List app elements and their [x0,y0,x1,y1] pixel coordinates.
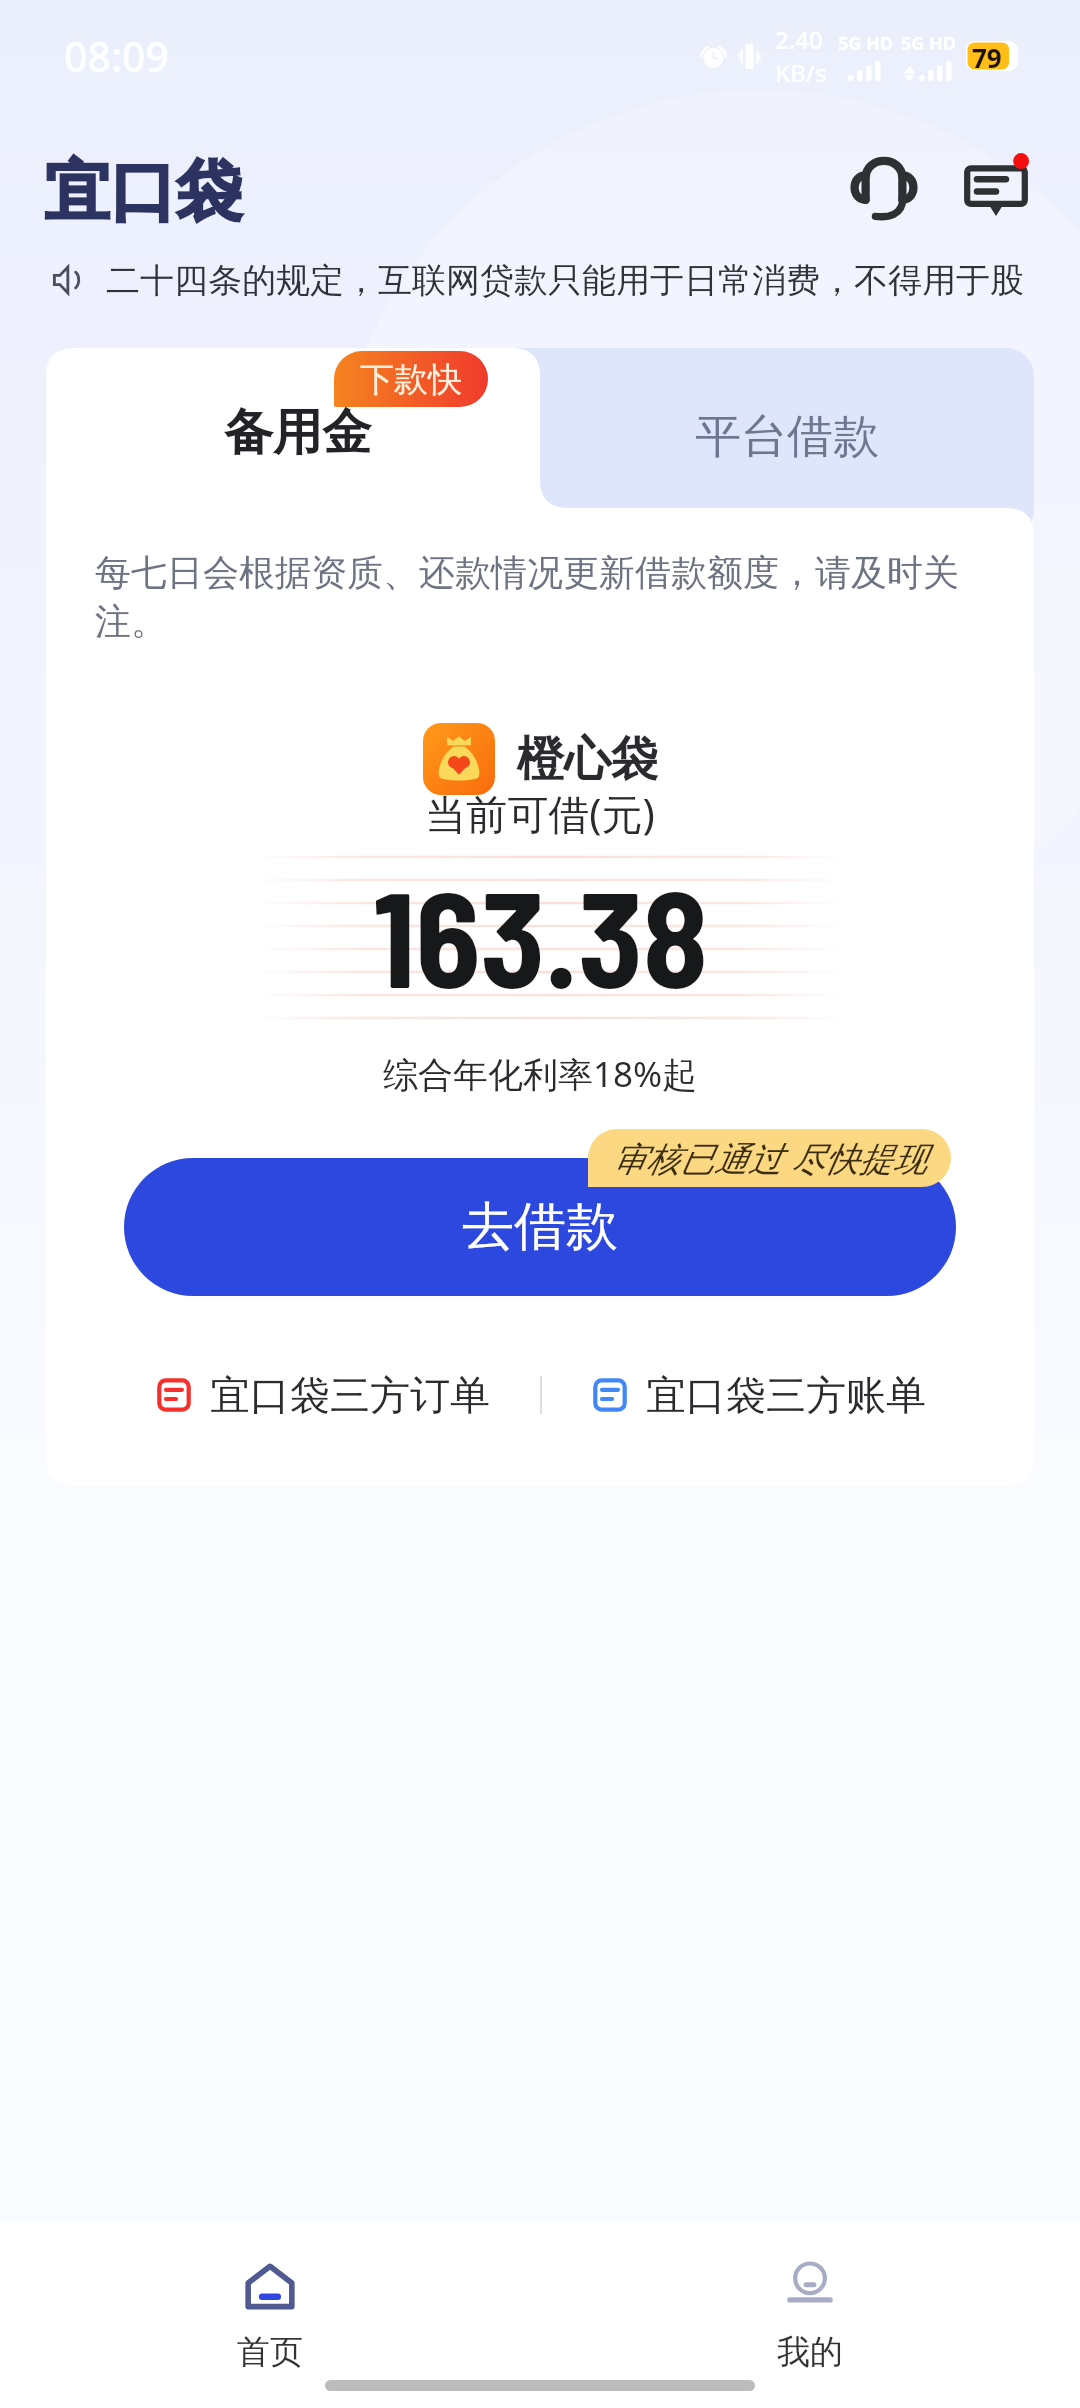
staticText: 平台借款 [695,408,879,466]
staticText: 去借款 [462,1194,618,1260]
staticText: HD [866,31,893,56]
button[interactable]: 在线客服 [838,137,930,229]
staticText: 综合年化利率18%起 [46,1050,1034,1098]
staticText: 2.40 [775,23,823,56]
staticText: 审核已通过 尽快提现 [612,1135,927,1181]
button[interactable]: 我的 [540,2223,1080,2408]
staticText: 宜口袋三方账单 [646,1370,926,1420]
staticText: 5G [901,31,925,56]
staticText: 当前可借(元) [46,785,1034,841]
button[interactable]: 宜口袋三方账单 [590,1362,926,1428]
button[interactable]: 宜口袋三方订单 [154,1362,490,1428]
staticText: HD [929,31,956,56]
button[interactable]: 二十四条的规定，互联网贷款只能用于日常消费，不得用于股 [0,243,1080,317]
staticText: 橙心袋 [517,730,658,789]
staticText: 79 [972,40,1002,70]
button[interactable]: 首页 [0,2223,540,2408]
staticText: 我的 [777,2331,843,2373]
staticText: 每七日会根据资质、还款情况更新借款额度，请及时关注。 [95,550,987,645]
button[interactable]: 消息 [950,137,1042,229]
staticText: 5G [838,31,862,56]
staticText: 二十四条的规定，互联网贷款只能用于日常消费，不得用于股 [106,259,1024,302]
staticText: 08:09 [64,28,169,84]
staticText: 首页 [237,2331,303,2373]
staticText: KB/s [775,56,827,89]
staticText: 宜口袋三方订单 [210,1370,490,1420]
button[interactable]: 去借款 [124,1158,956,1296]
staticText: 下款快 [360,358,462,401]
button[interactable]: 平台借款 [493,348,1034,538]
staticText: 宜口袋 [44,150,242,233]
staticText: 163.38 [373,855,708,1015]
staticText: 备用金 [224,402,371,464]
